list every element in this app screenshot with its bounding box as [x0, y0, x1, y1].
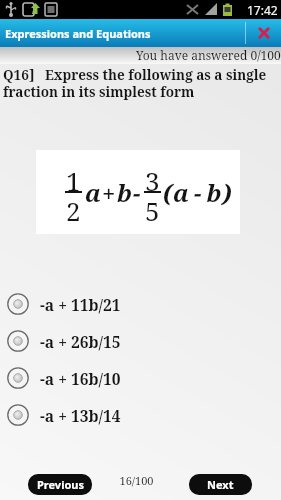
- staticText: -a + 11b/21: [40, 294, 121, 315]
- staticText: a: [85, 176, 101, 209]
- button[interactable]: -a + 26b/15: [7, 330, 121, 352]
- button[interactable]: Next: [189, 474, 252, 495]
- staticText: +: [102, 176, 116, 209]
- staticText: You have answered 0/100: [136, 47, 281, 63]
- staticText: Previous: [37, 477, 84, 492]
- staticText: -a + 16b/10: [40, 368, 121, 389]
- staticText: 5: [145, 193, 160, 221]
- staticText: −: [133, 176, 141, 209]
- staticText: 16/100: [0, 473, 277, 488]
- staticText: 3: [145, 163, 160, 191]
- button[interactable]: Previous: [28, 474, 92, 495]
- staticText: 2: [66, 193, 81, 221]
- staticText: (a − b): [163, 176, 233, 209]
- staticText: 17:42: [247, 2, 278, 18]
- staticText: -a + 13b/14: [40, 405, 121, 426]
- staticText: b: [117, 176, 132, 209]
- button[interactable]: -a + 16b/10: [7, 367, 121, 389]
- staticText: Next: [207, 477, 234, 492]
- staticText: Q16] Express the following as a single f…: [3, 66, 267, 101]
- button[interactable]: -a + 13b/14: [7, 404, 121, 426]
- button[interactable]: -a + 11b/21: [7, 293, 121, 315]
- staticText: Expressions and Equations: [5, 26, 151, 41]
- staticText: -a + 26b/15: [40, 331, 121, 352]
- staticText: 1: [66, 163, 81, 191]
- button[interactable]: [246, 19, 281, 47]
